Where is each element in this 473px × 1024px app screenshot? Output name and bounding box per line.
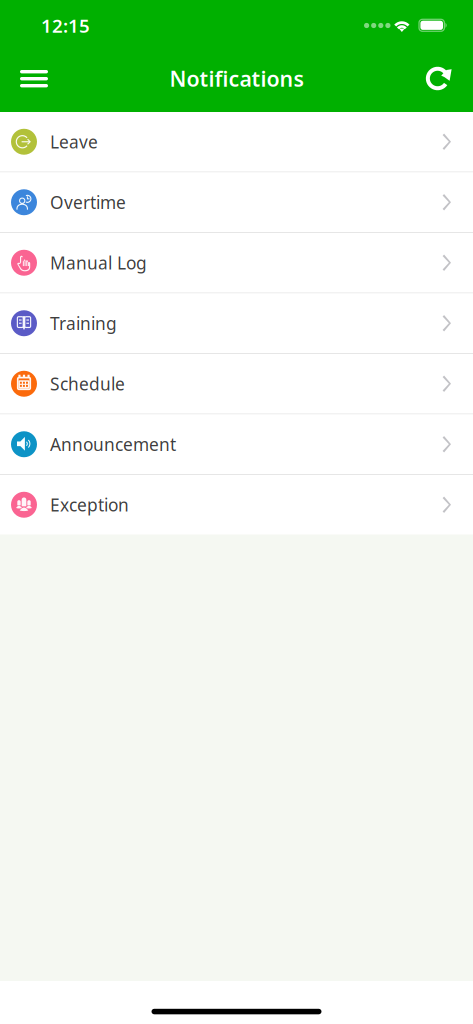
button[interactable]: Leave <box>0 112 473 171</box>
staticText: Exception <box>50 493 129 516</box>
button[interactable]: Manual Log <box>0 233 473 292</box>
staticText: Schedule <box>50 372 125 395</box>
staticText: Announcement <box>50 433 176 456</box>
button[interactable]: Training <box>0 293 473 353</box>
staticText: Notifications <box>169 64 304 93</box>
staticText: Overtime <box>50 191 126 214</box>
button[interactable]: Menu <box>7 55 61 103</box>
button[interactable]: Refresh <box>412 54 466 102</box>
staticText: Leave <box>50 130 98 153</box>
button[interactable]: Exception <box>0 475 473 534</box>
button[interactable]: Schedule <box>0 354 473 413</box>
staticText: Manual Log <box>50 251 147 274</box>
button[interactable]: Announcement <box>0 414 473 474</box>
staticText: Training <box>50 312 117 335</box>
button[interactable]: Overtime <box>0 172 473 232</box>
staticText: 12:15 <box>41 13 90 38</box>
